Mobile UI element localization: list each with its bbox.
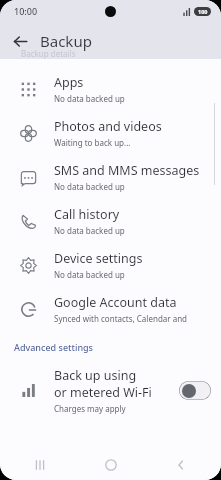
staticText: Device settings xyxy=(54,250,143,267)
staticText: Photos and videos xyxy=(54,118,162,135)
button[interactable]: Photos and videos xyxy=(0,111,221,155)
button[interactable]: Home xyxy=(97,451,125,479)
staticText: No data backed up xyxy=(54,181,125,192)
staticText: No data backed up xyxy=(54,225,125,236)
button[interactable]: SMS and MMS messages xyxy=(0,155,221,199)
staticText: SMS and MMS messages xyxy=(54,162,200,179)
staticText: Advanced settings xyxy=(14,341,93,353)
staticText: Charges may apply xyxy=(54,403,126,414)
staticText: Waiting to back up... xyxy=(54,137,131,148)
staticText: Back up using mobile xyxy=(54,367,175,384)
staticText: No data backed up xyxy=(54,269,125,280)
staticText: Google Account data xyxy=(54,294,177,311)
button[interactable]: Back xyxy=(167,451,195,479)
button[interactable]: Back up using mobile xyxy=(0,361,221,420)
staticText: No data backed up xyxy=(54,93,125,104)
button[interactable]: Call history xyxy=(0,199,221,243)
staticText: Apps xyxy=(54,74,84,91)
button[interactable]: Google Account data xyxy=(0,287,221,331)
staticText: Synced with contacts, Calendar and more xyxy=(54,313,209,324)
staticText: Backup xyxy=(40,31,92,51)
staticText: or metered Wi-Fi data xyxy=(54,384,175,401)
button[interactable]: Apps xyxy=(0,67,221,111)
button[interactable]: Navigate up xyxy=(6,27,34,55)
staticText: Call history xyxy=(54,206,120,223)
button[interactable]: Recent apps xyxy=(26,451,54,479)
button[interactable]: Back up using mobile or metered Wi-Fi da… xyxy=(179,381,211,400)
button[interactable]: Device settings xyxy=(0,243,221,287)
staticText: Backup details xyxy=(21,48,76,59)
staticText: 10:00 xyxy=(14,5,38,17)
staticText: 100 xyxy=(198,8,208,15)
